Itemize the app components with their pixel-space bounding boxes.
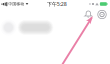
staticText: 中国移动 xyxy=(8,1,24,6)
button[interactable]: Settings xyxy=(97,10,106,19)
staticText: 下午5:28 xyxy=(47,0,67,8)
button[interactable]: Notifications xyxy=(84,10,93,19)
